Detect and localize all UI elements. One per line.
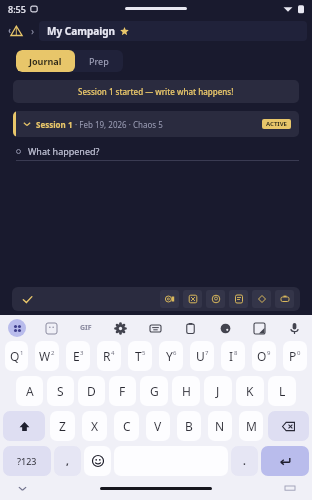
button[interactable]: A [16,376,43,406]
staticText: Y [166,348,173,364]
staticText: 8 [234,349,238,357]
button[interactable]: GIF [76,318,96,338]
staticText: F [119,383,126,399]
staticText: 1 [20,349,24,357]
staticText: W [39,348,51,364]
staticText: , [66,454,69,468]
button[interactable]: . [231,446,258,476]
staticText: GIF [80,323,92,333]
button[interactable]: R [97,341,121,371]
staticText: What happened? [28,145,100,157]
staticText: M [246,418,257,434]
button[interactable]: settings [110,318,130,338]
staticText: ?123 [17,455,37,467]
staticText: X [91,418,99,434]
button[interactable]: Save [18,290,36,308]
staticText: K [246,383,254,399]
staticText: · Feb 19, 2026 · Chaos 5 [73,119,163,130]
staticText: 0 [297,349,301,357]
button[interactable]: Oracle [206,290,225,308]
button[interactable]: J [204,376,232,406]
staticText: B [185,418,193,434]
button[interactable]: Journal [16,50,75,72]
button[interactable]: I [221,341,245,371]
staticText: O [257,348,267,364]
staticText: My Campaign [47,24,116,38]
button[interactable]: B [177,411,201,441]
button[interactable]: palette [215,318,235,338]
button[interactable]: P [283,341,307,371]
button[interactable]: Prep [75,50,123,72]
staticText: Q [10,348,20,364]
staticText: H [182,383,191,399]
staticText: 5 [142,349,146,357]
staticText: 8:55 [8,3,26,15]
staticText: Session 1 [36,119,73,130]
button[interactable]: Q [5,341,28,371]
button[interactable]: G [140,376,168,406]
button[interactable]: Hide keyboard [14,480,30,496]
button[interactable]: Backspace [268,411,309,441]
button[interactable]: Mention [160,290,179,308]
staticText: S [57,383,64,399]
button[interactable]: sticker [41,318,61,338]
button[interactable]: translate [249,318,269,338]
staticText: D [87,383,96,399]
button[interactable]: Session 1 [13,111,299,137]
staticText: 7 [205,349,209,357]
button[interactable]: S [47,376,74,406]
button[interactable]: C [114,411,139,441]
button[interactable]: W [35,341,59,371]
button[interactable]: Y [159,341,183,371]
button[interactable]: Dice [183,290,202,308]
button[interactable]: M [239,411,263,441]
button[interactable]: My Campaign [39,21,307,41]
staticText: C [123,418,131,434]
staticText: L [279,383,286,399]
staticText: 2 [51,349,55,357]
button[interactable]: Shift [3,411,45,441]
button[interactable]: Note [229,290,248,308]
staticText: Z [59,418,66,434]
button[interactable]: U [190,341,214,371]
staticText: Journal [29,55,62,67]
button[interactable]: clipboard [180,318,200,338]
staticText: N [215,418,225,434]
button[interactable]: , [54,446,81,476]
button[interactable]: Switch keyboard [282,480,298,496]
button[interactable]: Z [50,411,75,441]
button[interactable]: ?123 [3,446,51,476]
button[interactable]: Back [5,20,27,42]
staticText: I [229,348,234,364]
button[interactable]: Toolbox [8,319,26,337]
button[interactable]: X [82,411,107,441]
button[interactable]: F [109,376,136,406]
button[interactable]: clipboardkb [145,318,165,338]
button[interactable]: Scene [275,290,294,308]
staticText: Prep [89,55,109,67]
button[interactable]: Enter [261,446,309,476]
button[interactable]: D [78,376,105,406]
button[interactable]: H [172,376,200,406]
button[interactable]: N [208,411,232,441]
staticText: ACTIVE [266,120,287,128]
button[interactable]: T [128,341,152,371]
button[interactable]: K [236,376,264,406]
button[interactable]: E [66,341,90,371]
button[interactable]: L [268,376,296,406]
button[interactable]: Emoji [84,446,111,476]
button[interactable]: V [146,411,170,441]
staticText: 6 [173,349,177,357]
button[interactable]: mic [284,318,304,338]
staticText: 3 [80,349,84,357]
staticText: 4 [111,349,115,357]
staticText: J [216,383,220,399]
staticText: G [150,383,159,399]
button[interactable]: O [252,341,276,371]
button[interactable]: Random [252,290,271,308]
staticText: › [31,24,35,38]
staticText: R [103,348,111,364]
staticText: . [243,454,246,468]
staticText: U [196,348,205,364]
